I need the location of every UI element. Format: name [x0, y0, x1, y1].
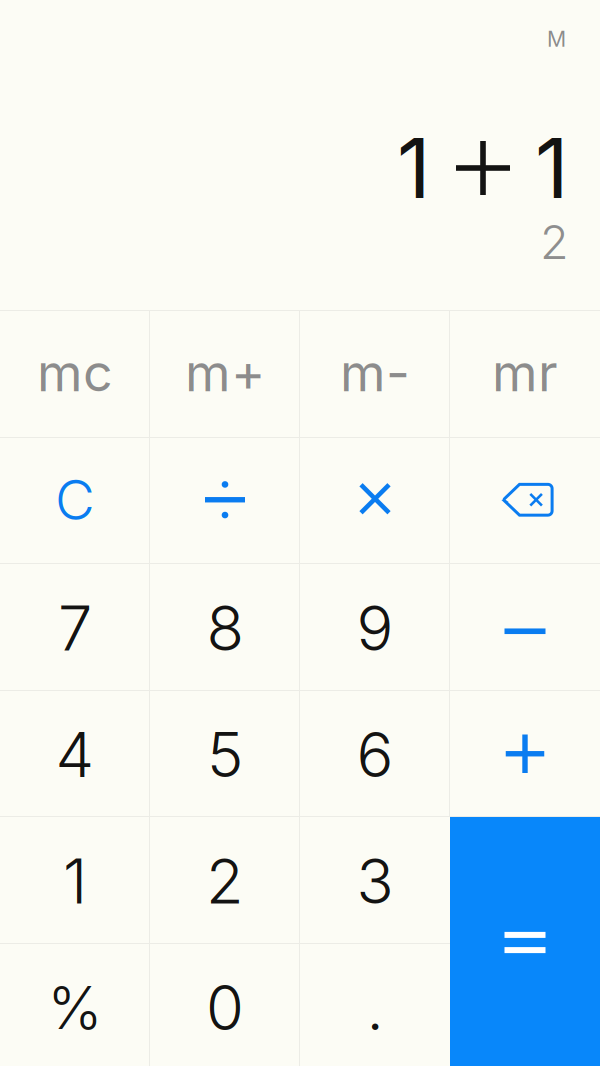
button[interactable]: mr [450, 310, 600, 436]
button[interactable]: mc [0, 310, 150, 436]
button[interactable]: 7 [0, 563, 150, 689]
button[interactable]: m- [300, 310, 450, 436]
staticText: 1 [63, 844, 87, 918]
staticText: 6 [356, 718, 393, 792]
button[interactable]: 2 [150, 816, 300, 942]
staticText: . [366, 971, 383, 1045]
staticText: 1 [397, 118, 431, 218]
staticText: 0 [206, 971, 244, 1045]
button[interactable]: Plus [450, 689, 600, 816]
button[interactable]: 9 [300, 563, 450, 689]
staticText: 7 [58, 591, 92, 665]
staticText: 8 [206, 591, 243, 665]
staticText: 1 [535, 118, 569, 218]
staticText: M [547, 26, 566, 52]
button[interactable]: % [0, 942, 150, 1066]
staticText: 9 [356, 591, 393, 665]
button[interactable]: 0 [150, 942, 300, 1066]
button[interactable]: 3 [300, 816, 450, 942]
staticText: 4 [55, 718, 94, 792]
button[interactable]: m+ [150, 310, 300, 436]
staticText: m+ [185, 341, 265, 404]
staticText: m- [340, 341, 410, 404]
staticText: mr [492, 341, 558, 404]
button[interactable]: 6 [300, 689, 450, 816]
staticText: 5 [207, 718, 243, 792]
staticText: mc [37, 341, 113, 404]
staticText: 3 [356, 844, 393, 918]
staticText: 2 [206, 844, 244, 918]
button[interactable]: 8 [150, 563, 300, 689]
button[interactable]: Equals [450, 816, 600, 1066]
staticText: 2 [540, 214, 569, 270]
button[interactable]: Delete [450, 436, 600, 563]
button[interactable]: 4 [0, 689, 150, 816]
staticText: C [55, 467, 95, 533]
button[interactable]: Divide [150, 436, 300, 563]
button[interactable]: C [0, 436, 150, 563]
button[interactable]: . [300, 942, 450, 1066]
staticText: % [47, 972, 102, 1043]
button[interactable]: Multiply [300, 436, 450, 563]
button[interactable]: 5 [150, 689, 300, 816]
button[interactable]: 1 [0, 816, 150, 942]
button[interactable]: Minus [450, 563, 600, 689]
